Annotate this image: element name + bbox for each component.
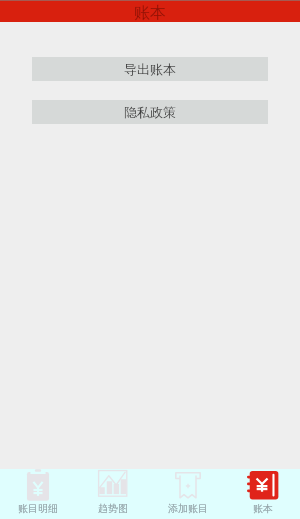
staticText: 账目明细 (18, 502, 58, 515)
button[interactable]: 账目明细 (0, 469, 75, 519)
button[interactable]: 导出账本 (32, 57, 268, 81)
staticText: 导出账本 (124, 61, 176, 77)
button[interactable]: 添加账目 (150, 469, 225, 519)
staticText: 趋势图 (98, 502, 128, 515)
staticText: 账本 (134, 3, 166, 22)
staticText: 账本 (253, 502, 273, 515)
button[interactable]: 账本 (225, 469, 300, 519)
staticText: 隐私政策 (124, 104, 176, 120)
button[interactable]: 趋势图 (75, 469, 150, 519)
button[interactable]: 隐私政策 (32, 100, 268, 124)
staticText: 添加账目 (168, 502, 208, 515)
